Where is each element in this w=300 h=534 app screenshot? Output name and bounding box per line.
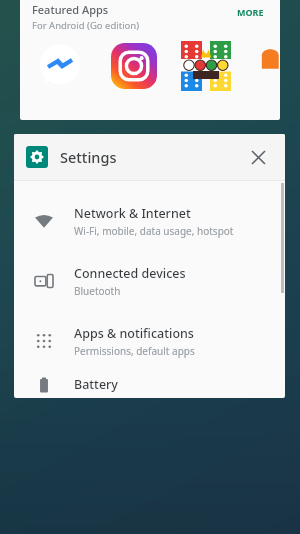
staticText: Bluetooth [74,284,121,298]
button[interactable]: Connected devices [14,251,285,311]
button[interactable]: Close [243,142,273,172]
staticText: Settings [60,147,117,167]
staticText: Wi-Fi, mobile, data usage, hotspot [74,224,234,238]
staticText: Apps & notifications [74,325,194,342]
button[interactable] [254,40,280,92]
staticText: Connected devices [74,265,186,282]
staticText: Featured Apps [32,2,109,17]
staticText: Permissions, default apps [74,344,195,358]
button[interactable]: MORE [233,2,268,22]
staticText: Battery [74,376,118,393]
staticText: MORE [237,6,264,18]
button[interactable]: Network & Internet [14,191,285,251]
button[interactable] [180,40,232,92]
staticText: Network & Internet [74,205,191,222]
button[interactable]: Battery [14,371,285,398]
button[interactable]: Apps & notifications [14,311,285,371]
button[interactable]: Featured Apps [20,0,280,120]
staticText: For Android (Go edition) [32,19,140,32]
button[interactable] [34,40,86,92]
button[interactable] [108,40,160,92]
